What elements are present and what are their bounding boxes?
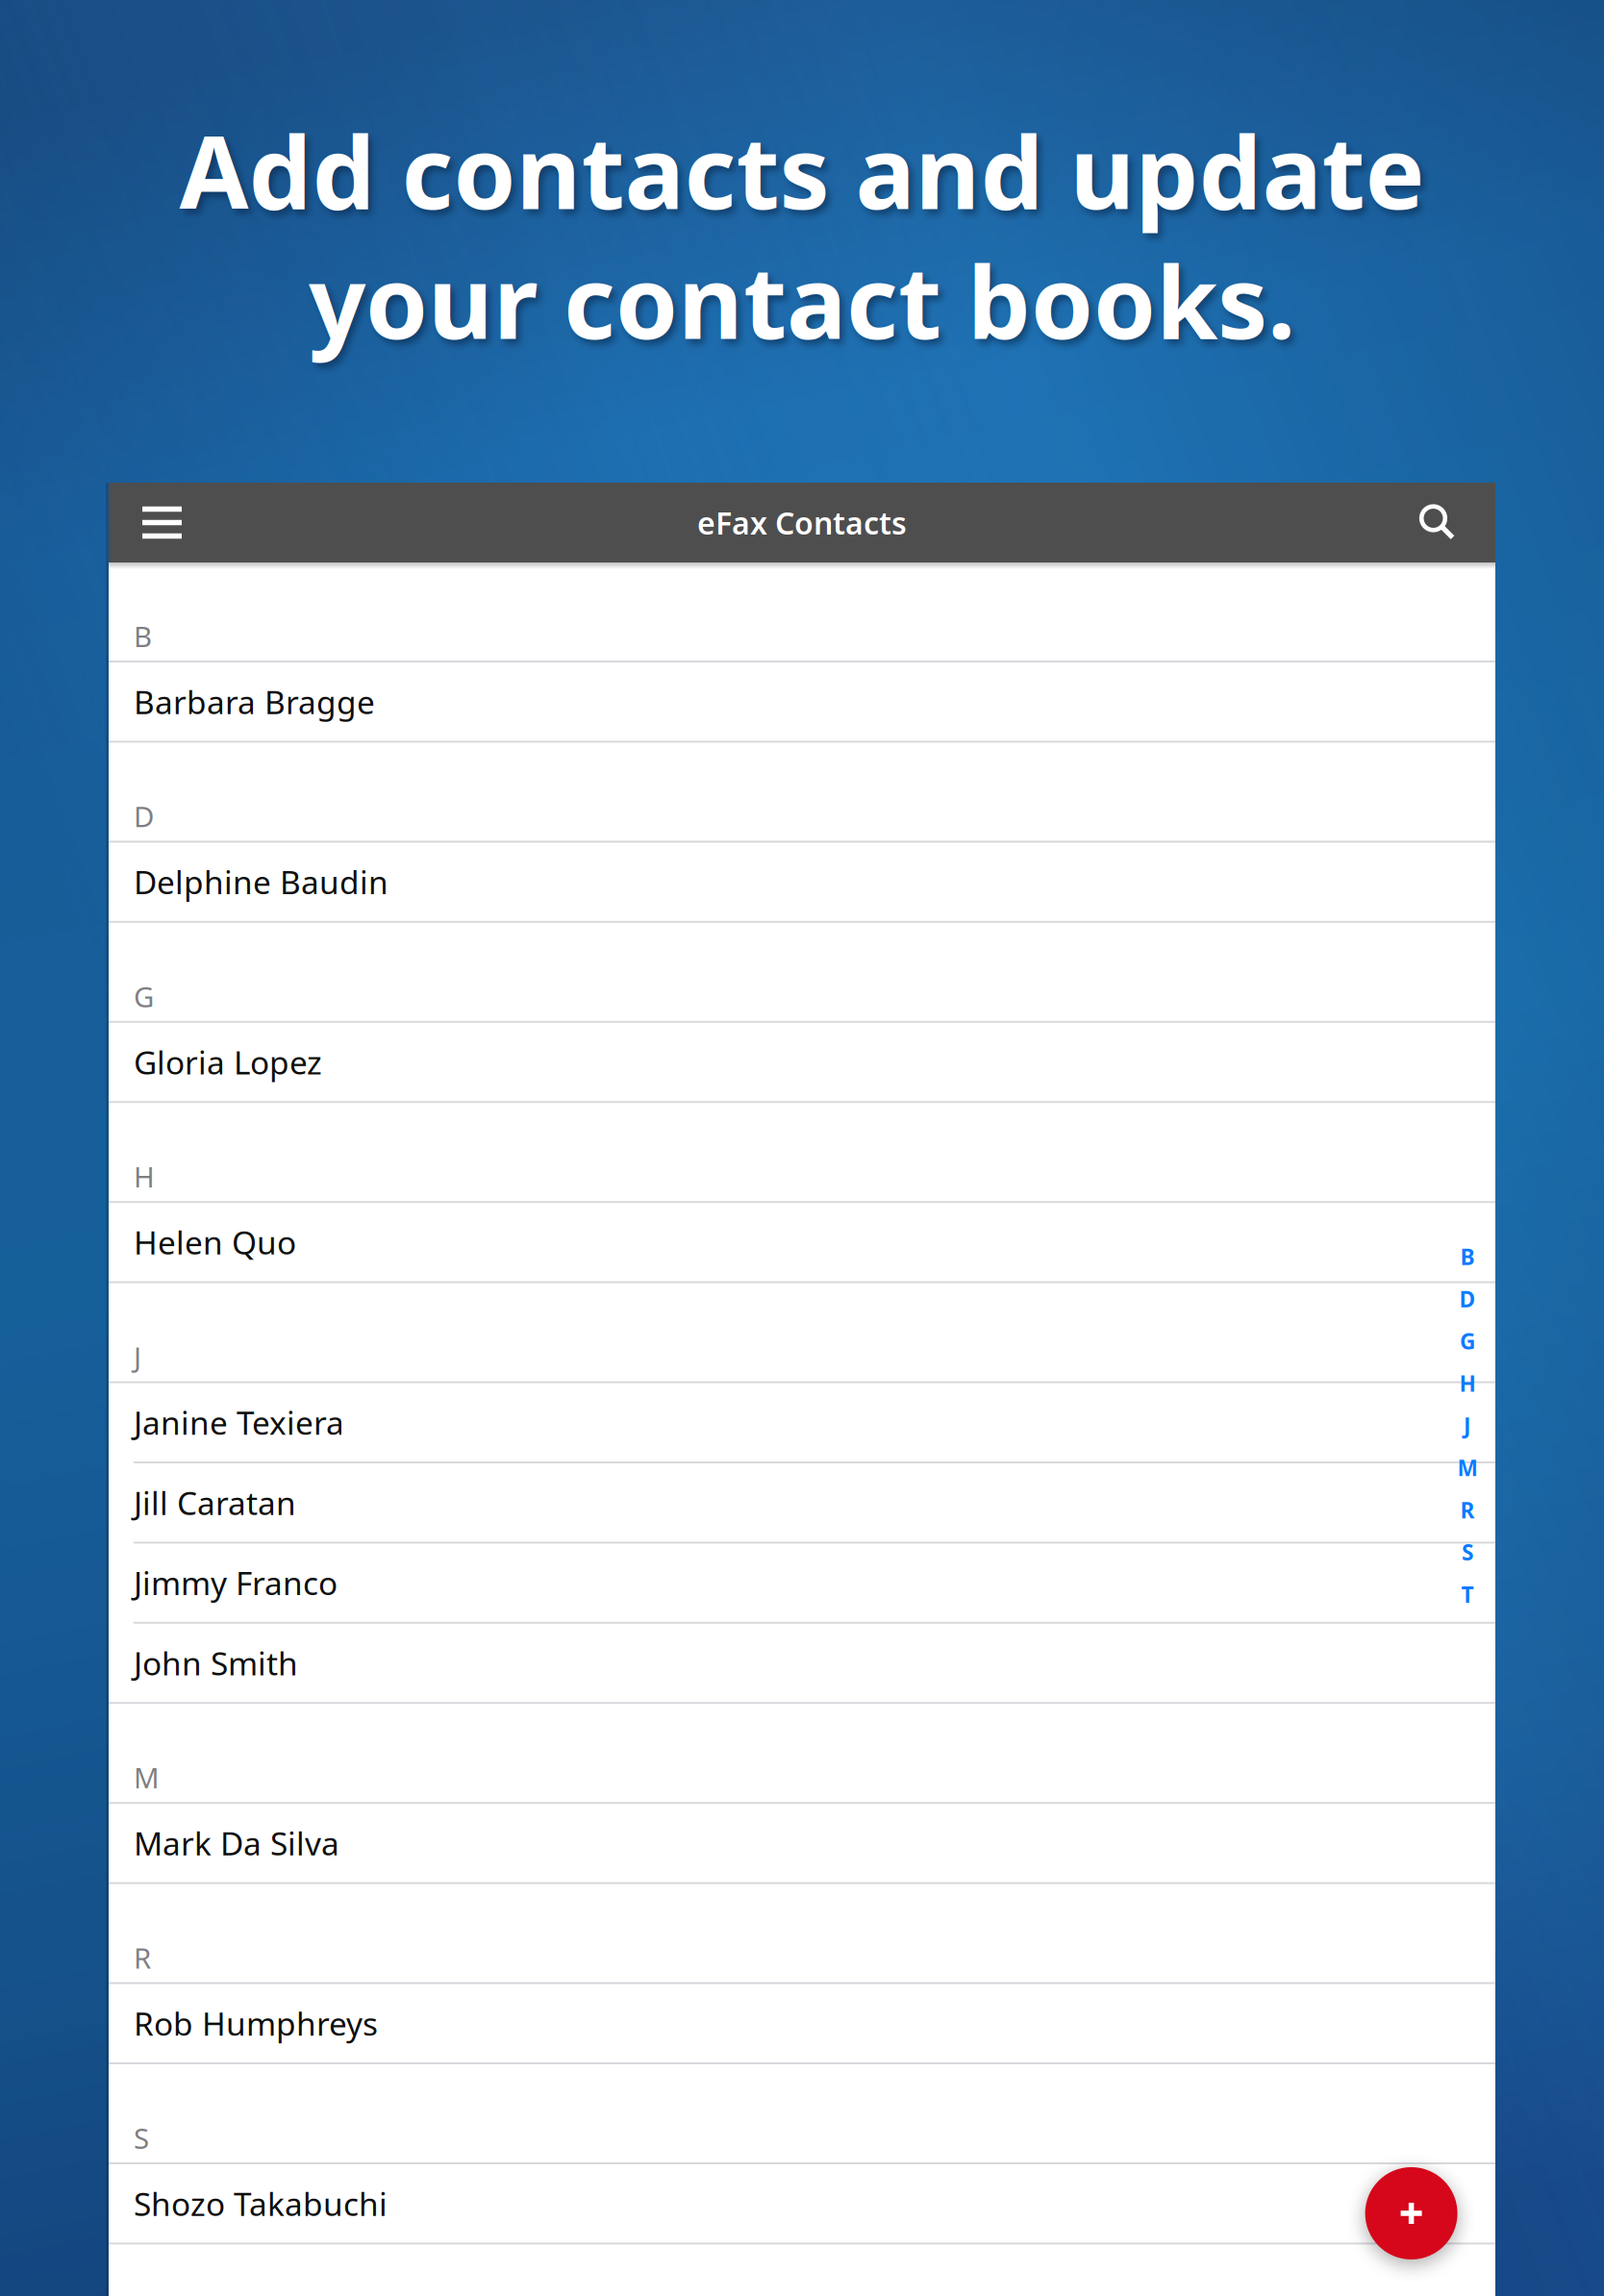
staticText: Helen Quo — [134, 1221, 296, 1263]
staticText: G — [1460, 1327, 1475, 1355]
button[interactable]: Jimmy Franco — [109, 1544, 1495, 1622]
staticText: your contact books. — [309, 234, 1295, 366]
button[interactable]: Barbara Bragge — [109, 662, 1495, 741]
button[interactable]: Shozo Takabuchi — [109, 2164, 1495, 2243]
button[interactable]: R — [1453, 1489, 1482, 1531]
button[interactable]: Helen Quo — [109, 1203, 1495, 1281]
staticText: J — [1464, 1411, 1471, 1440]
staticText: John Smith — [134, 1642, 298, 1684]
staticText: M — [1457, 1453, 1478, 1482]
staticText: R — [1460, 1495, 1475, 1524]
staticText: B — [134, 617, 152, 655]
staticText: R — [134, 1939, 151, 1976]
staticText: D — [1459, 1284, 1476, 1313]
button[interactable]: Mark Da Silva — [109, 1804, 1495, 1882]
staticText: D — [134, 797, 154, 835]
button[interactable]: Delphine Baudin — [109, 843, 1495, 921]
staticText: H — [134, 1158, 155, 1195]
staticText: Jill Caratan — [134, 1481, 296, 1524]
staticText: G — [134, 978, 154, 1015]
staticText: S — [1462, 1538, 1473, 1567]
button[interactable]: Gloria Lopez — [109, 1023, 1495, 1101]
button[interactable]: John Smith — [109, 1624, 1495, 1702]
button[interactable]: B — [1453, 1235, 1482, 1278]
staticText: J — [134, 1338, 141, 1375]
staticText: H — [1459, 1369, 1476, 1398]
button[interactable]: G — [1453, 1320, 1482, 1362]
staticText: S — [134, 2119, 149, 2157]
button[interactable]: S — [1453, 1531, 1482, 1573]
button[interactable]: Rob Humphreys — [109, 1984, 1495, 2062]
button[interactable]: Janine Texiera — [109, 1383, 1495, 1461]
staticText: Barbara Bragge — [134, 680, 375, 723]
button[interactable]: Search — [1401, 483, 1474, 562]
staticText: Add contacts and update — [179, 104, 1425, 237]
staticText: Delphine Baudin — [134, 861, 388, 903]
button[interactable]: Jill Caratan — [109, 1463, 1495, 1542]
button[interactable]: J — [1453, 1404, 1482, 1447]
staticText: Gloria Lopez — [134, 1041, 322, 1083]
staticText: B — [1460, 1242, 1475, 1271]
button[interactable]: Menu — [126, 483, 198, 562]
staticText: Jimmy Franco — [134, 1561, 338, 1604]
button[interactable]: D — [1453, 1278, 1482, 1320]
staticText: M — [134, 1759, 160, 1796]
staticText: Rob Humphreys — [134, 2002, 378, 2045]
staticText: Mark Da Silva — [134, 1822, 339, 1864]
button[interactable]: T — [1453, 1573, 1482, 1615]
staticText: Janine Texiera — [134, 1401, 344, 1444]
staticText: T — [1461, 1580, 1474, 1609]
button[interactable]: H — [1453, 1362, 1482, 1404]
button[interactable]: Add contact — [1365, 2167, 1457, 2259]
staticText: Shozo Takabuchi — [134, 2182, 388, 2225]
staticText: eFax Contacts — [697, 502, 907, 543]
button[interactable]: M — [1453, 1447, 1482, 1489]
